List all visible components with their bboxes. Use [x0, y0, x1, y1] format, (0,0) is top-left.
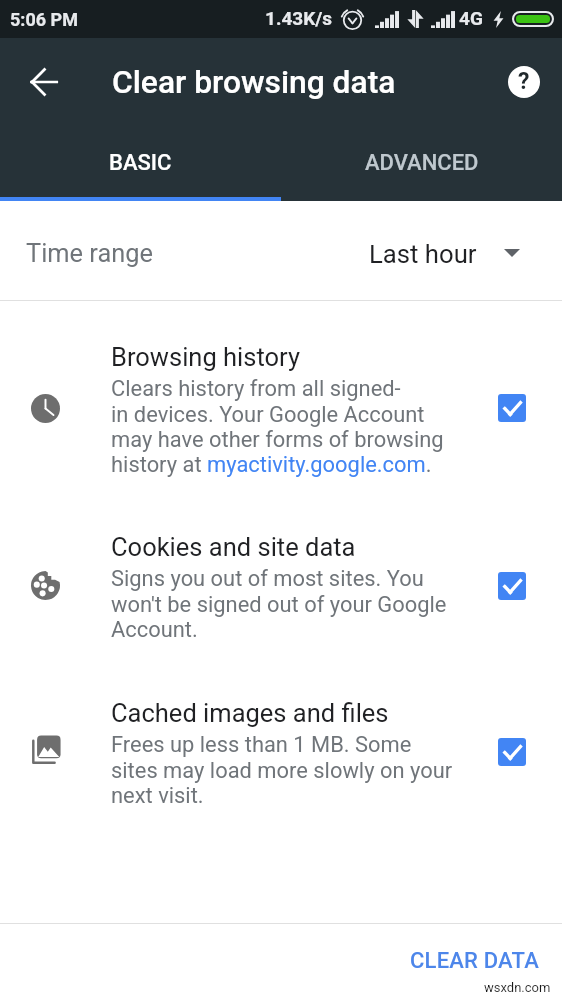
- staticText: Cached images and files: [111, 698, 389, 728]
- staticText: Last hour: [369, 239, 477, 269]
- button[interactable]: Help: [500, 58, 548, 106]
- button[interactable]: Time range: [0, 201, 562, 300]
- staticText: ?: [518, 68, 530, 95]
- button[interactable]: CLEAR DATA: [398, 943, 551, 979]
- staticText: ADVANCED: [365, 150, 479, 176]
- button[interactable]: Toggle: [488, 562, 536, 610]
- button[interactable]: Toggle: [488, 384, 536, 432]
- staticText: Browsing history: [111, 342, 301, 372]
- button[interactable]: BASIC: [0, 125, 281, 201]
- staticText: Clears history from all signed- in devic…: [111, 376, 444, 478]
- button[interactable]: ADVANCED: [281, 125, 562, 201]
- button[interactable]: Browsing history: [0, 342, 562, 478]
- staticText: 1.43K/s: [265, 7, 333, 29]
- button[interactable]: Cookies and site data: [0, 532, 562, 643]
- staticText: 4G: [459, 7, 483, 29]
- staticText: CLEAR DATA: [410, 948, 539, 974]
- button[interactable]: Navigate up: [16, 54, 72, 110]
- staticText: 5:06 PM: [10, 9, 78, 30]
- staticText: Clear browsing data: [112, 63, 396, 100]
- staticText: wsxdn.com: [484, 980, 551, 995]
- staticText: Time range: [26, 238, 154, 268]
- button[interactable]: Cached images and files: [0, 698, 562, 809]
- staticText: Frees up less than 1 MB. Some sites may …: [111, 732, 453, 809]
- staticText: Cookies and site data: [111, 532, 356, 562]
- staticText: BASIC: [109, 150, 172, 176]
- staticText: Signs you out of most sites. You won't b…: [111, 566, 447, 643]
- button[interactable]: Toggle: [488, 728, 536, 776]
